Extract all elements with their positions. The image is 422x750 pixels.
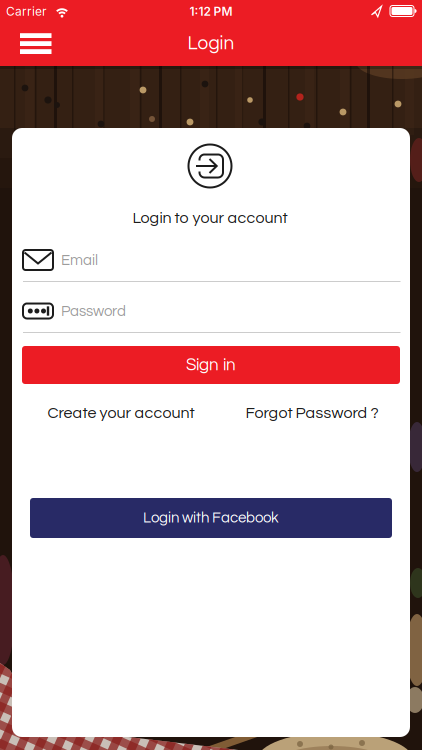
button[interactable]: Create your account <box>21 398 221 428</box>
staticText: 1:12 PM <box>189 4 232 19</box>
staticText: Forgot Password ? <box>245 405 378 421</box>
staticText: Sign in <box>186 356 236 374</box>
button[interactable]: Forgot Password ? <box>217 398 407 428</box>
button[interactable] <box>16 21 60 65</box>
button[interactable]: Login with Facebook <box>30 498 392 538</box>
button[interactable]: Sign in <box>22 346 400 384</box>
button[interactable]: Password <box>22 299 400 333</box>
staticText: Carrier <box>6 4 47 19</box>
staticText: Login to your account <box>132 210 287 226</box>
staticText: Login <box>187 34 234 53</box>
staticText: Create your account <box>47 405 194 421</box>
staticText: Password <box>61 304 126 319</box>
staticText: Email <box>61 253 98 268</box>
staticText: Login with Facebook <box>143 510 279 526</box>
button[interactable]: Email <box>22 248 400 282</box>
